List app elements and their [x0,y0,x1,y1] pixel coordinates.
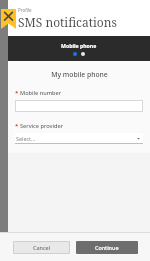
button[interactable]: Step 1 [73,52,77,56]
staticText: Profile [18,7,32,13]
staticText: My mobile phone [51,70,108,79]
button[interactable]: Step 2 [81,52,85,56]
button[interactable]: Mobile number input [15,100,143,112]
staticText: * [15,89,19,97]
staticText: * [15,122,19,130]
staticText: Mobile number [20,89,62,97]
button[interactable]: Service provider dropdown [15,133,143,144]
button[interactable]: Mobile phone [61,42,97,49]
staticText: SMS notifications [18,14,117,30]
staticText: Select... [16,135,36,142]
staticText: Service provider [20,122,64,130]
staticText: Continue [95,244,119,251]
staticText: Cancel [33,244,51,251]
button[interactable]: Continue [76,241,138,254]
staticText: Mobile phone [61,42,97,49]
button[interactable]: Cancel [13,241,70,254]
other: Brand badge [1,9,16,29]
